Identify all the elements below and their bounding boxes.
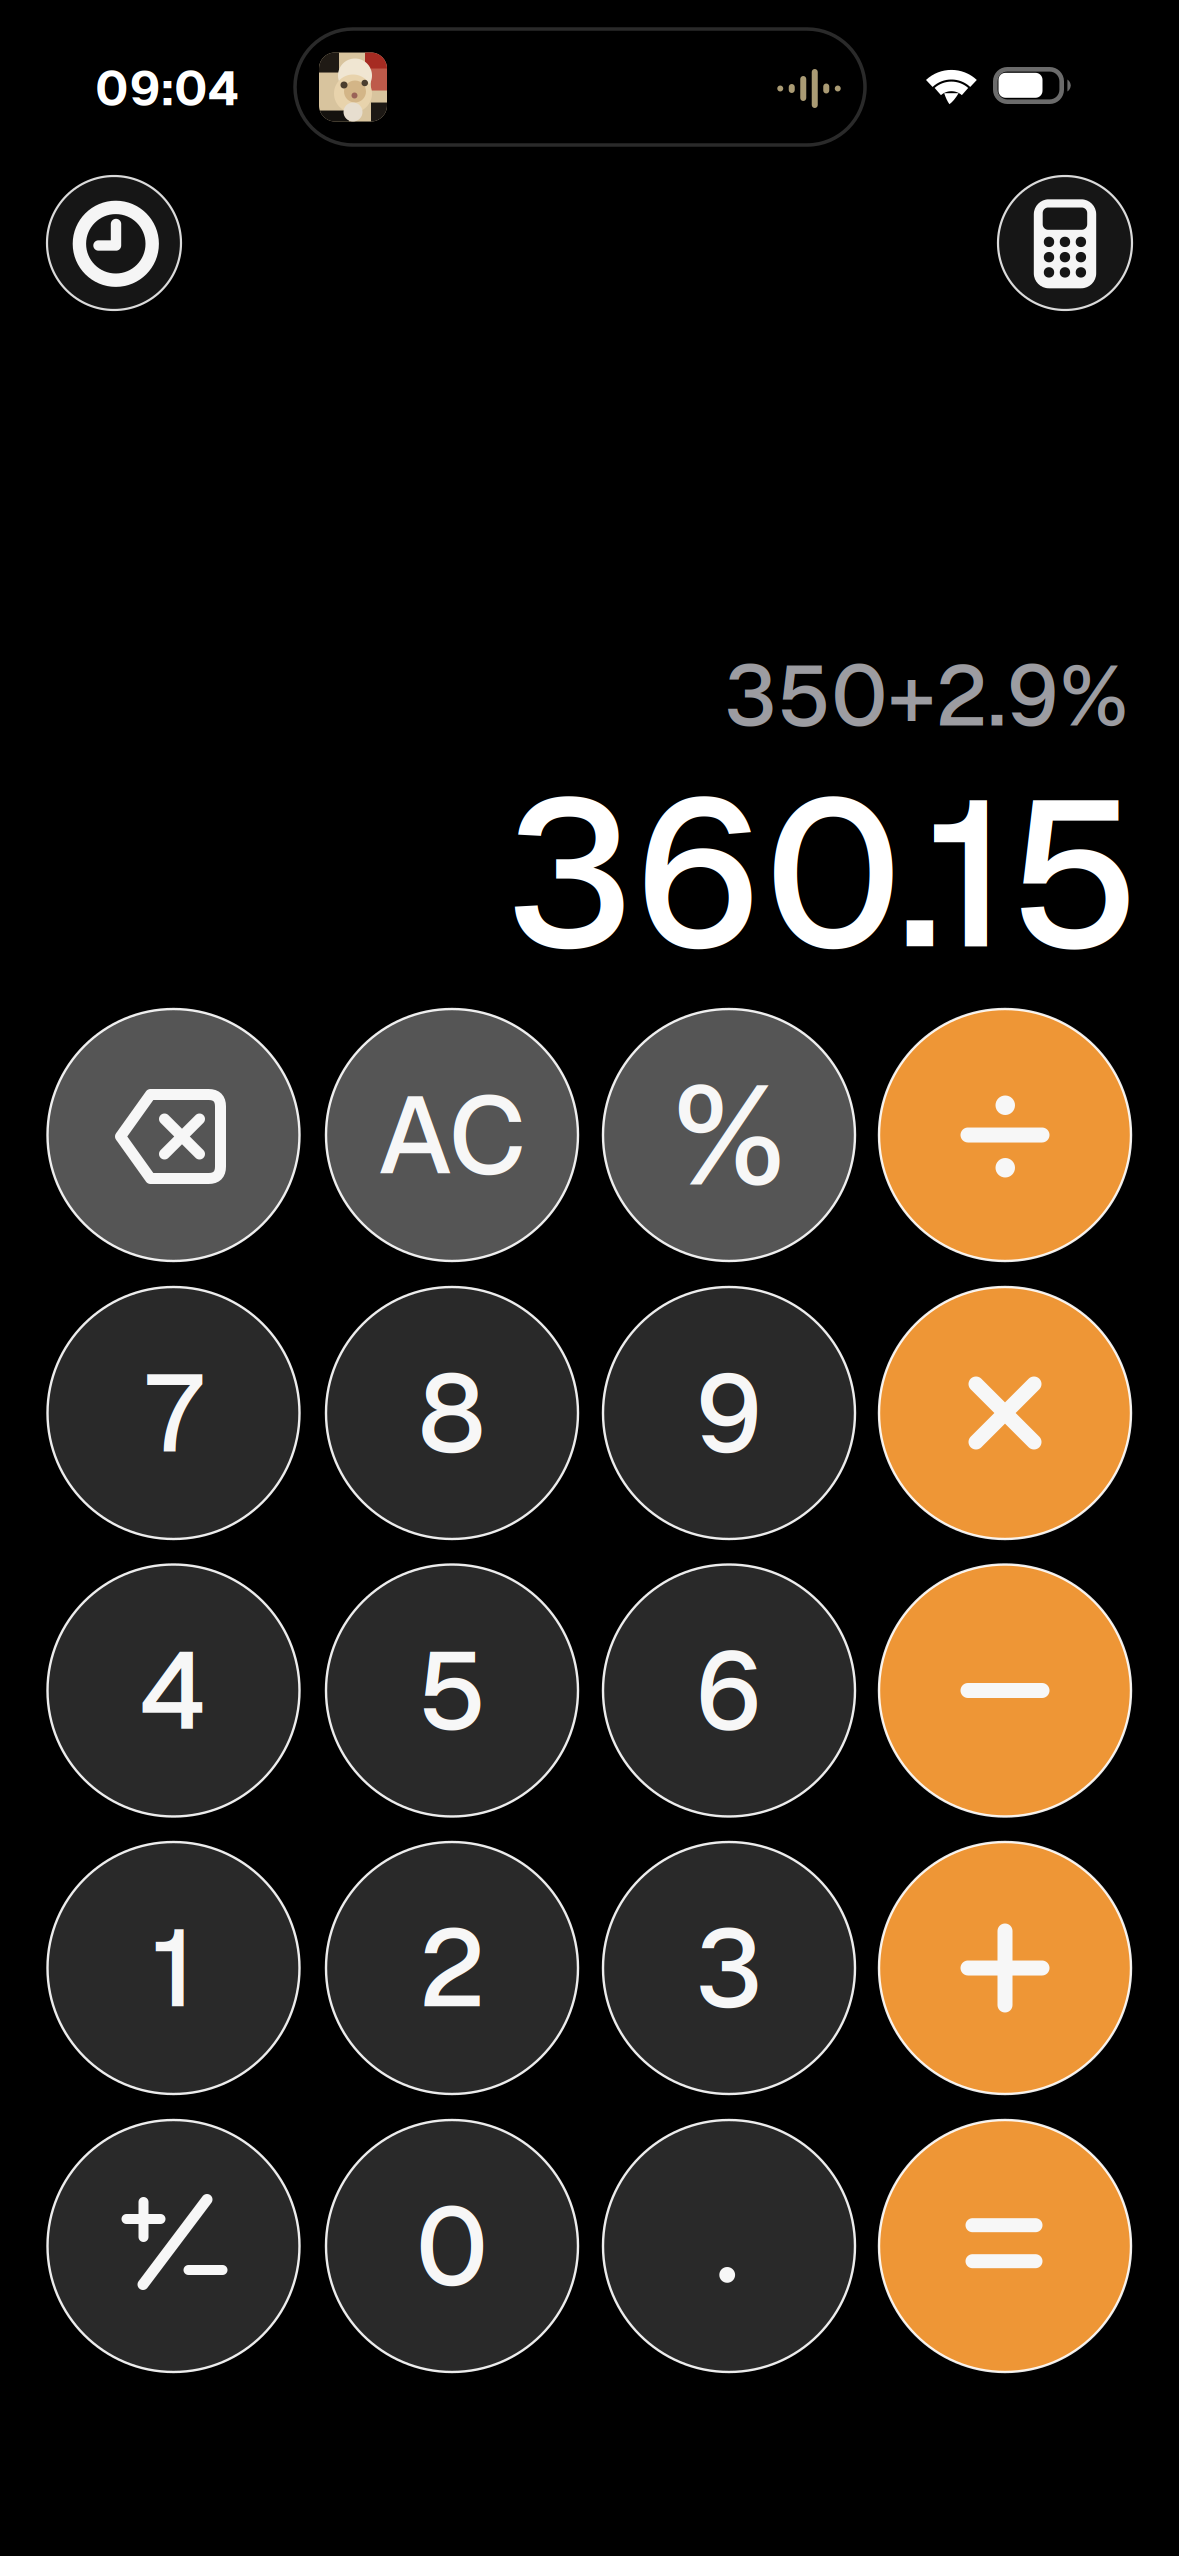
staticText: 6 xyxy=(694,1620,763,1761)
button[interactable]: 0 xyxy=(326,2120,578,2372)
button[interactable]: 8 xyxy=(326,1287,578,1539)
staticText: 09:04 xyxy=(95,57,239,119)
button[interactable]: History xyxy=(47,176,181,310)
button[interactable]: Multiply xyxy=(879,1287,1131,1539)
button[interactable]: Positive negative xyxy=(47,2120,299,2372)
button[interactable]: 3 xyxy=(603,1842,855,2094)
staticText: 5 xyxy=(417,1620,486,1761)
button[interactable]: 7 xyxy=(47,1287,299,1539)
button[interactable]: 6 xyxy=(603,1564,855,1816)
button[interactable]: Decimal point xyxy=(603,2120,855,2372)
staticText: 9 xyxy=(694,1343,763,1483)
button[interactable]: Plus xyxy=(879,1842,1131,2094)
staticText: 360.15 xyxy=(505,740,1141,1007)
button[interactable]: Backspace xyxy=(47,1009,299,1261)
staticText: 350+2.9% xyxy=(724,641,1128,750)
button[interactable]: AC xyxy=(326,1009,578,1261)
button[interactable]: Equals xyxy=(879,2120,1131,2372)
button[interactable]: 1 xyxy=(47,1842,299,2094)
staticText: 8 xyxy=(418,1343,486,1483)
staticText: 7 xyxy=(145,1343,202,1483)
button[interactable]: Minus xyxy=(879,1564,1131,1816)
staticText: 4 xyxy=(139,1620,207,1761)
staticText: 3 xyxy=(695,1898,763,2038)
button[interactable]: 9 xyxy=(603,1287,855,1539)
staticText: 2 xyxy=(418,1898,486,2038)
button[interactable]: 2 xyxy=(326,1842,578,2094)
staticText: 0 xyxy=(415,2176,488,2316)
button[interactable]: Calculator keypad xyxy=(998,176,1132,310)
button[interactable]: % xyxy=(603,1009,855,1261)
button[interactable]: 4 xyxy=(47,1564,299,1816)
staticText: AC xyxy=(378,1065,526,1205)
button[interactable]: Divide xyxy=(879,1009,1131,1261)
staticText: % xyxy=(673,1045,785,1225)
button[interactable]: 5 xyxy=(326,1564,578,1816)
staticText: 1 xyxy=(151,1898,195,2038)
